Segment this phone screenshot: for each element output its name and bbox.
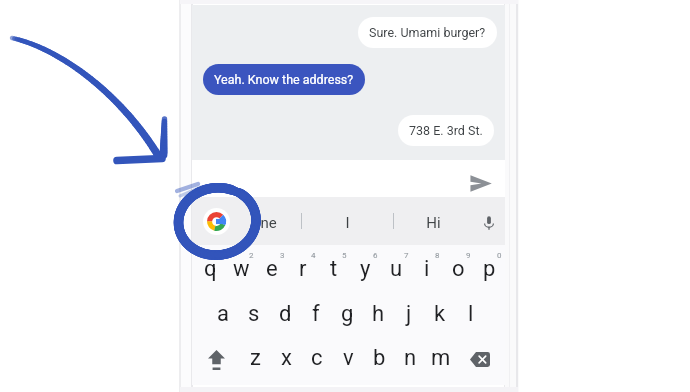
button[interactable]: c xyxy=(304,343,330,373)
button[interactable]: h xyxy=(365,299,391,329)
button[interactable]: x xyxy=(273,343,299,373)
staticText: 2 xyxy=(249,251,254,260)
button[interactable]: 5 xyxy=(337,248,351,262)
button[interactable]: 3 xyxy=(275,248,289,262)
button[interactable]: Voice input xyxy=(472,199,506,247)
staticText: e xyxy=(266,256,278,282)
staticText: y xyxy=(360,256,371,282)
button[interactable]: f xyxy=(303,299,329,329)
button[interactable]: q xyxy=(197,254,223,284)
button[interactable]: a xyxy=(210,299,236,329)
button[interactable]: p xyxy=(476,254,502,284)
staticText: p xyxy=(483,256,496,282)
staticText: 8 xyxy=(435,251,440,260)
button[interactable]: I xyxy=(324,199,370,247)
staticText: 4 xyxy=(311,251,316,260)
button[interactable]: ne xyxy=(245,199,291,247)
staticText: o xyxy=(452,256,465,282)
staticText: l xyxy=(468,301,474,327)
button[interactable]: Sure. Umami burger? xyxy=(358,17,497,48)
button[interactable]: 9 xyxy=(461,248,475,262)
staticText: a xyxy=(217,301,229,327)
staticText: v xyxy=(343,345,354,371)
staticText: w xyxy=(233,256,250,282)
staticText: i xyxy=(424,256,430,282)
button[interactable]: 0 xyxy=(492,248,506,262)
button[interactable]: b xyxy=(366,343,392,373)
button[interactable]: 2 xyxy=(244,248,258,262)
button[interactable]: Yeah. Know the address? xyxy=(203,64,365,95)
button[interactable]: d xyxy=(272,299,298,329)
staticText: q xyxy=(204,256,217,282)
staticText: Yeah. Know the address? xyxy=(214,72,354,87)
button[interactable]: e xyxy=(259,254,285,284)
staticText: r xyxy=(299,256,307,282)
staticText: m xyxy=(431,345,451,371)
button[interactable]: Backspace xyxy=(462,339,498,379)
button[interactable]: m xyxy=(428,343,454,373)
button[interactable]: i xyxy=(414,254,440,284)
button[interactable]: 6 xyxy=(368,248,382,262)
button[interactable]: v xyxy=(335,343,361,373)
button[interactable]: r xyxy=(290,254,316,284)
button[interactable]: 1 xyxy=(213,248,227,262)
staticText: 6 xyxy=(373,251,378,260)
button[interactable]: z xyxy=(242,343,268,373)
staticText: t xyxy=(330,256,338,282)
button[interactable]: y xyxy=(352,254,378,284)
staticText: g xyxy=(341,301,354,327)
staticText: Hi xyxy=(426,214,441,232)
staticText: 5 xyxy=(342,251,347,260)
button[interactable]: j xyxy=(396,299,422,329)
staticText: 738 E. 3rd St. xyxy=(409,123,483,138)
staticText: I xyxy=(345,214,350,232)
button[interactable]: Backspace xyxy=(462,339,498,379)
button[interactable]: Shift xyxy=(199,340,233,380)
staticText: 3 xyxy=(280,251,285,260)
staticText: u xyxy=(390,256,403,282)
button[interactable]: w xyxy=(228,254,254,284)
staticText: k xyxy=(434,301,446,327)
button[interactable]: 8 xyxy=(430,248,444,262)
button[interactable]: n xyxy=(397,343,423,373)
button[interactable]: l xyxy=(458,299,484,329)
staticText: b xyxy=(373,345,386,371)
staticText: Sure. Umami burger? xyxy=(369,25,486,40)
staticText: d xyxy=(279,301,292,327)
button[interactable]: t xyxy=(321,254,347,284)
button[interactable]: s xyxy=(241,299,267,329)
button[interactable]: 4 xyxy=(306,248,320,262)
staticText: ne xyxy=(260,214,277,232)
staticText: j xyxy=(406,301,412,327)
button[interactable]: Shift xyxy=(199,340,233,380)
button[interactable]: Hi xyxy=(410,199,456,247)
staticText: 7 xyxy=(404,251,409,260)
button[interactable]: 738 E. 3rd St. xyxy=(398,115,494,146)
staticText: s xyxy=(248,301,260,327)
staticText: h xyxy=(372,301,385,327)
button[interactable]: o xyxy=(445,254,471,284)
staticText: f xyxy=(312,301,320,327)
button[interactable]: u xyxy=(383,254,409,284)
staticText: n xyxy=(404,345,417,371)
staticText: c xyxy=(311,345,323,371)
staticText: z xyxy=(250,345,261,371)
staticText: 1 xyxy=(218,251,223,260)
staticText: 0 xyxy=(497,251,502,260)
staticText: x xyxy=(281,345,292,371)
staticText: 9 xyxy=(466,251,471,260)
button[interactable]: 7 xyxy=(399,248,413,262)
button[interactable]: Send xyxy=(469,171,493,195)
button[interactable]: Google search xyxy=(196,197,236,245)
button[interactable]: g xyxy=(334,299,360,329)
button[interactable]: k xyxy=(427,299,453,329)
